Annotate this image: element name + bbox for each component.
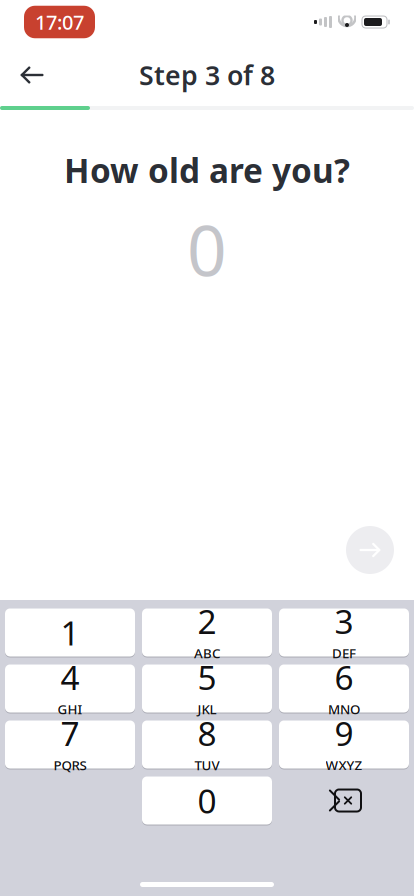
- staticText: 2: [197, 599, 216, 643]
- staticText: 1: [60, 610, 79, 655]
- button[interactable]: Delete: [279, 776, 409, 824]
- staticText: PQRS: [53, 756, 86, 774]
- button[interactable]: 8: [142, 720, 272, 769]
- staticText: Step 3 of 8: [139, 57, 275, 93]
- staticText: 0: [187, 203, 227, 295]
- staticText: 0: [197, 778, 216, 823]
- button[interactable]: Next: [346, 526, 394, 574]
- button[interactable]: 7: [5, 720, 135, 769]
- staticText: ABC: [194, 644, 220, 662]
- staticText: WXYZ: [325, 756, 362, 774]
- staticText: GHI: [57, 700, 82, 718]
- staticText: 17:07: [35, 9, 84, 35]
- staticText: 7: [60, 711, 79, 755]
- button[interactable]: 9: [279, 720, 409, 769]
- button[interactable]: 6: [279, 664, 409, 713]
- staticText: TUV: [194, 756, 219, 774]
- button[interactable]: 2: [142, 608, 272, 657]
- staticText: DEF: [332, 644, 356, 662]
- staticText: 3: [334, 599, 353, 643]
- button[interactable]: 3: [279, 608, 409, 657]
- button[interactable]: Back: [6, 51, 58, 99]
- button[interactable]: 5: [142, 664, 272, 713]
- staticText: JKL: [197, 700, 216, 718]
- staticText: 8: [197, 711, 216, 755]
- button[interactable]: 0: [142, 776, 272, 825]
- button[interactable]: 4: [5, 664, 135, 713]
- staticText: How old are you?: [64, 148, 350, 192]
- staticText: 4: [60, 655, 79, 699]
- staticText: 6: [334, 655, 353, 699]
- staticText: 9: [334, 711, 353, 755]
- staticText: MNO: [328, 700, 360, 718]
- button[interactable]: 1: [5, 608, 135, 657]
- staticText: 5: [197, 655, 216, 699]
